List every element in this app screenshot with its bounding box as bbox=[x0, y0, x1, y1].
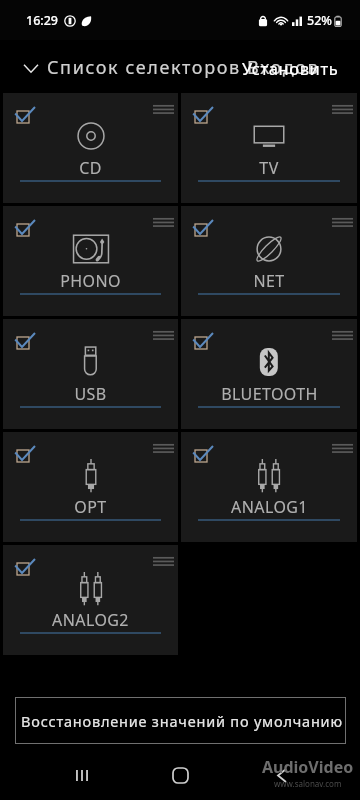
button[interactable]: BLUETOOTH bbox=[181, 319, 357, 429]
staticText: ANALOG2 bbox=[52, 609, 129, 631]
button[interactable]: TV bbox=[181, 93, 357, 203]
button[interactable]: Recents bbox=[58, 751, 106, 799]
button[interactable]: Back bbox=[258, 751, 306, 799]
button[interactable]: Home bbox=[156, 751, 204, 799]
staticText: 16:29 bbox=[26, 12, 59, 29]
staticText: BLUETOOTH bbox=[221, 383, 318, 405]
staticText: ANALOG1 bbox=[231, 496, 308, 518]
button[interactable]: ANALOG2 bbox=[3, 545, 178, 655]
staticText: 52% bbox=[307, 12, 332, 29]
button[interactable]: Установить bbox=[242, 57, 339, 79]
button[interactable]: USB bbox=[3, 319, 178, 429]
staticText: OPT bbox=[74, 496, 107, 518]
button[interactable]: PHONO bbox=[3, 206, 178, 316]
staticText: TV bbox=[259, 157, 279, 179]
staticText: NET bbox=[253, 270, 285, 292]
button[interactable]: OPT bbox=[3, 432, 178, 542]
staticText: PHONO bbox=[60, 270, 121, 292]
button[interactable]: Восстановление значений по умолчанию bbox=[15, 697, 346, 744]
button[interactable]: CD bbox=[3, 93, 178, 203]
staticText: Восстановление значений по умолчанию bbox=[21, 711, 343, 731]
staticText: USB bbox=[74, 383, 107, 405]
button[interactable]: ANALOG1 bbox=[181, 432, 357, 542]
staticText: CD bbox=[79, 157, 102, 179]
staticText: Список селекторов Входов bbox=[47, 55, 320, 80]
button[interactable]: NET bbox=[181, 206, 357, 316]
staticText: AudioVideo bbox=[262, 756, 354, 778]
staticText: www.salonav.com bbox=[274, 778, 342, 789]
